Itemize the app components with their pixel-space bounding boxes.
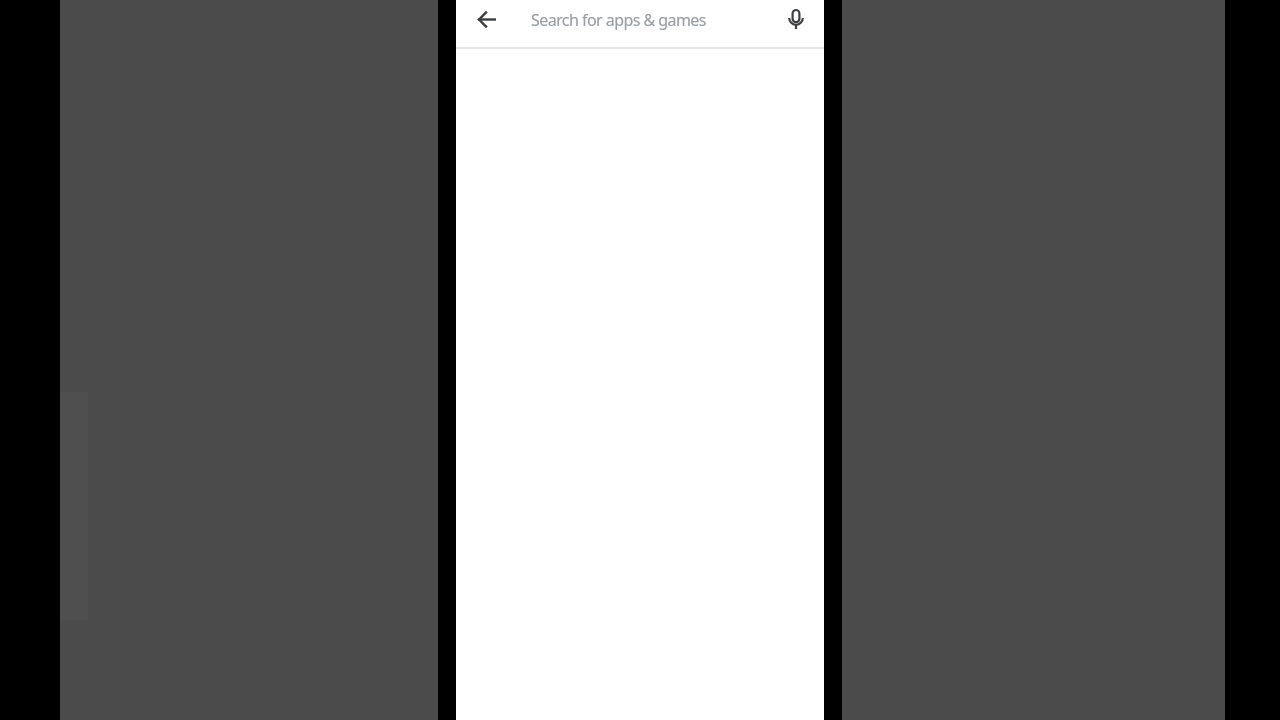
button[interactable] (471, 3, 503, 35)
button[interactable]: Search for apps & games (531, 0, 706, 40)
button[interactable] (780, 4, 812, 36)
staticText: Search for apps & games (531, 9, 706, 31)
